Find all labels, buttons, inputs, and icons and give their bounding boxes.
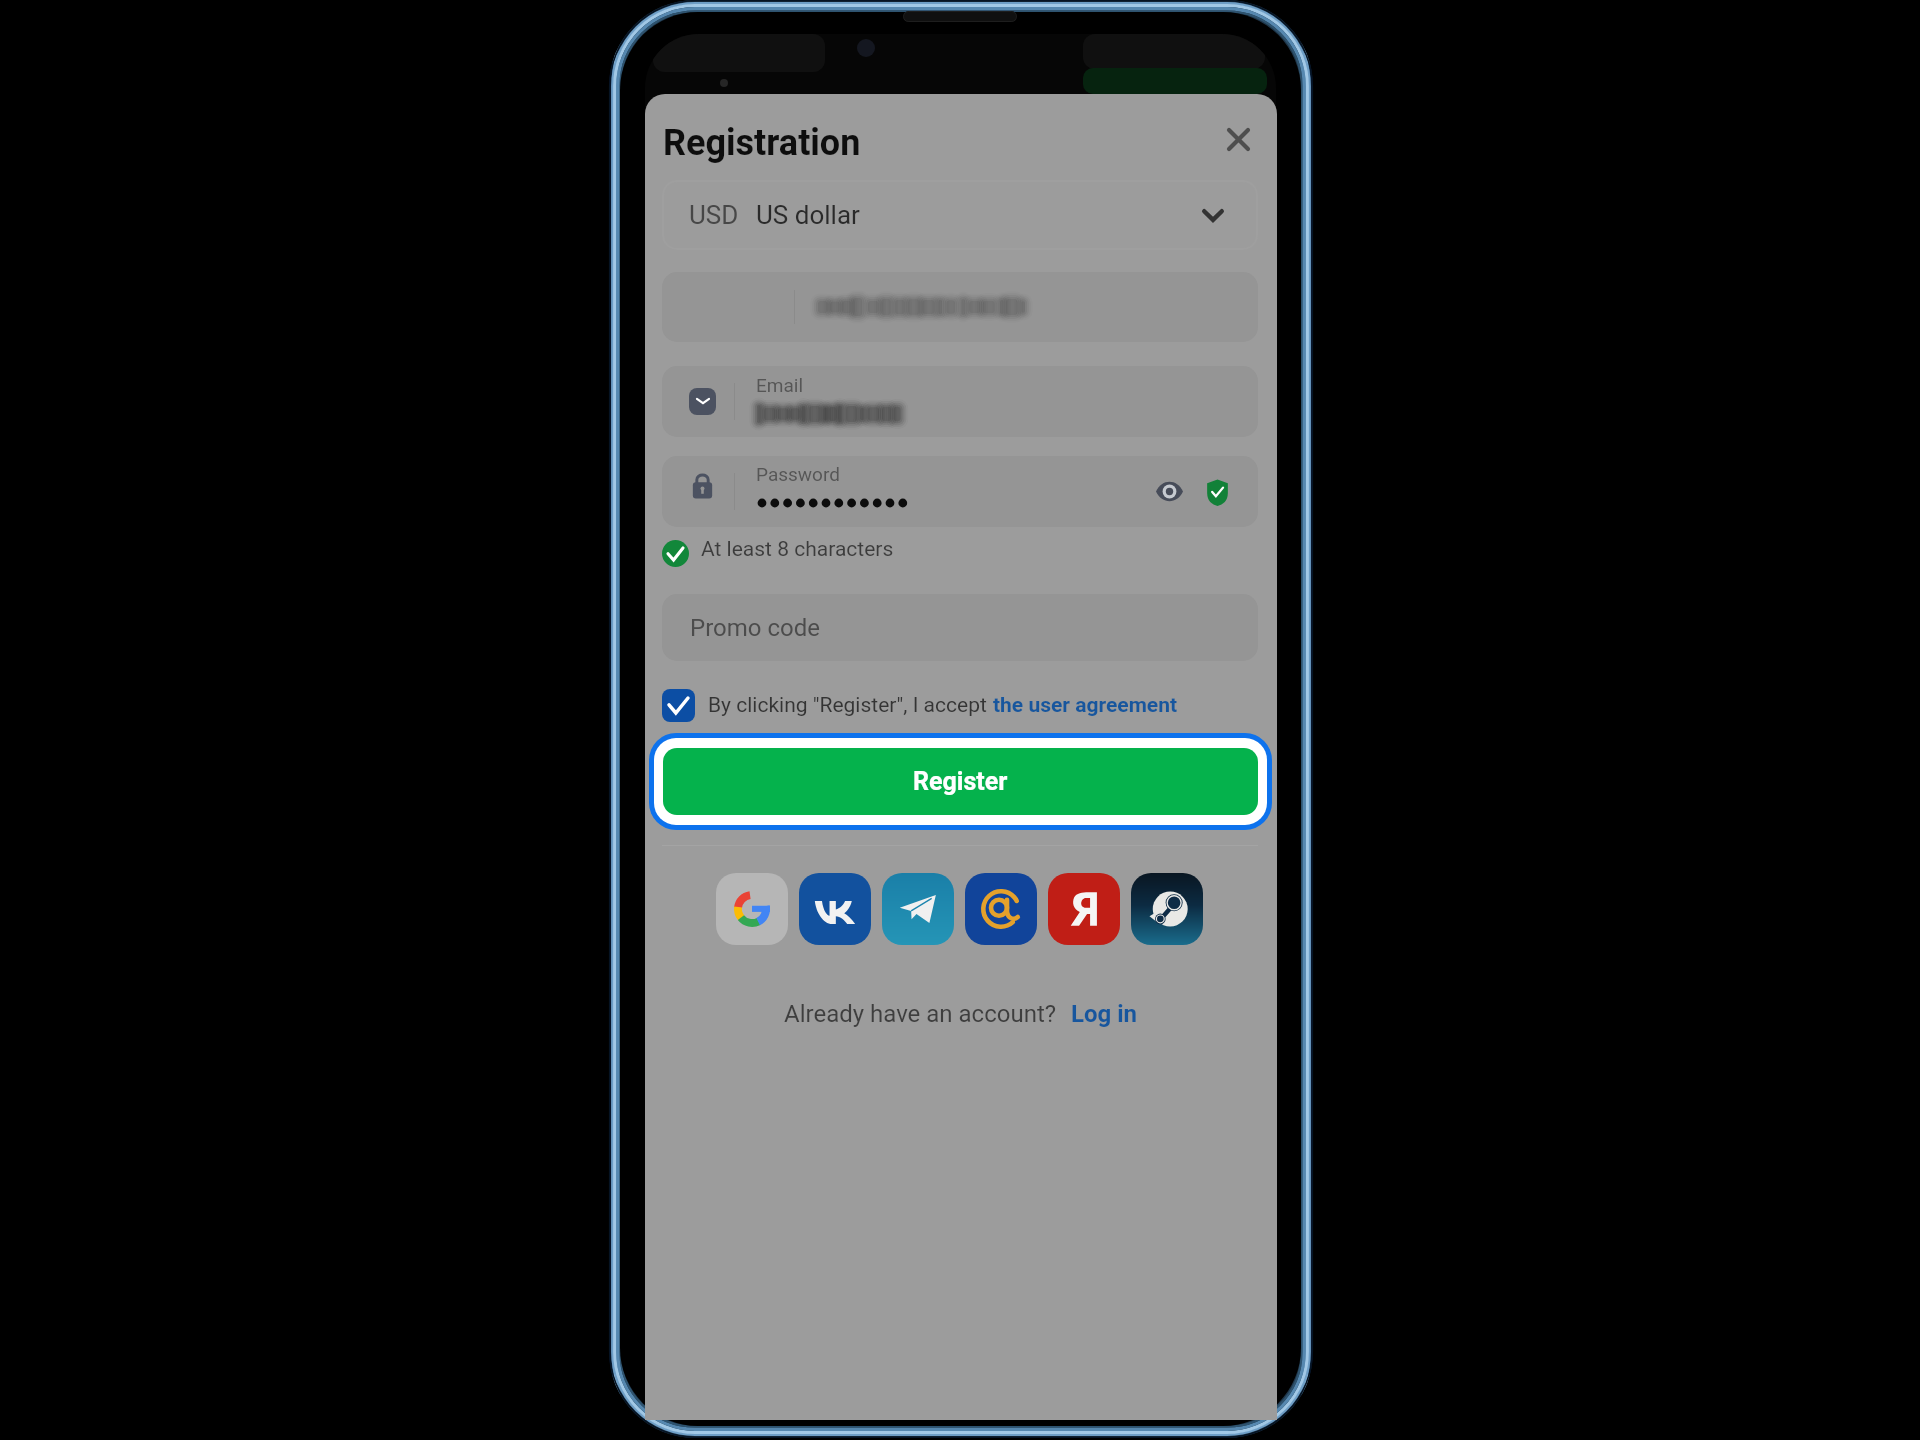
- button[interactable]: USD: [662, 180, 1258, 250]
- staticText: Password: [756, 463, 840, 485]
- staticText: USD: [689, 200, 739, 230]
- button[interactable]: Sign in with VK: [799, 873, 871, 945]
- button[interactable]: [662, 272, 1258, 342]
- staticText: At least 8 characters: [701, 537, 894, 562]
- button[interactable]: By clicking "Register", I accept: [662, 687, 1178, 723]
- button[interactable]: the user agreement: [993, 693, 1178, 718]
- button[interactable]: Log in: [1071, 1000, 1138, 1028]
- button[interactable]: Email: [662, 366, 1258, 437]
- staticText: Already have an account?: [784, 1000, 1057, 1028]
- staticText: By clicking "Register", I accept: [708, 693, 993, 718]
- button[interactable]: Register: [663, 748, 1258, 815]
- staticText: Registration: [663, 122, 861, 164]
- button[interactable]: Close: [1217, 118, 1259, 160]
- button[interactable]: Sign in with Telegram: [882, 873, 954, 945]
- button[interactable]: Sign in with Yandex: [1048, 873, 1120, 945]
- staticText: Log in: [1071, 1000, 1138, 1028]
- button[interactable]: Sign in with Steam: [1131, 873, 1203, 945]
- button[interactable]: Sign in with Google: [716, 873, 788, 945]
- staticText: Email: [756, 374, 804, 396]
- staticText: Promo code: [690, 614, 820, 642]
- staticText: US dollar: [756, 200, 860, 230]
- staticText: Register: [913, 767, 1008, 796]
- staticText: the user agreement: [993, 693, 1178, 718]
- button[interactable]: Sign in with Mail: [965, 873, 1037, 945]
- button[interactable]: Show password: [1150, 474, 1189, 509]
- button[interactable]: Promo code: [662, 594, 1258, 661]
- button[interactable]: Password: [662, 456, 1258, 527]
